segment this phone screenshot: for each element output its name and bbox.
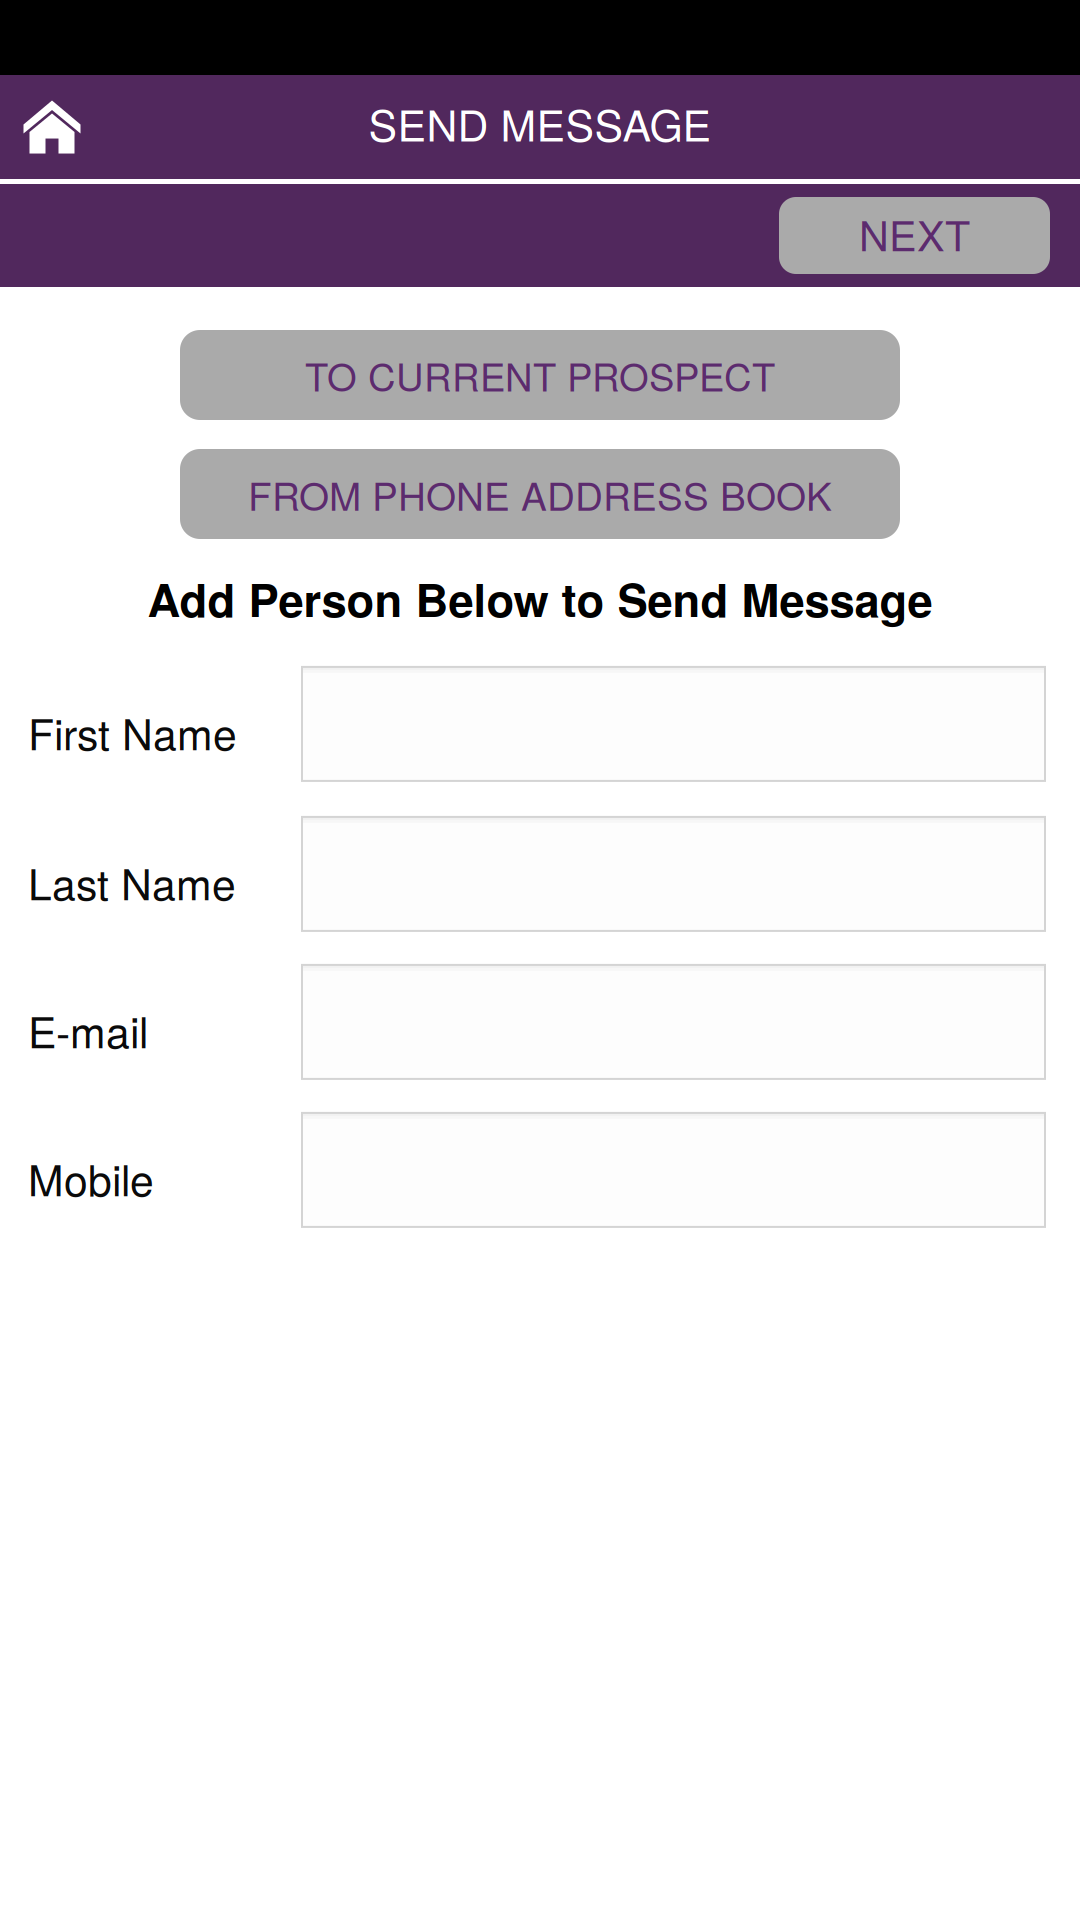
button[interactable]: NEXT: [779, 197, 1050, 274]
staticText: Last Name: [28, 851, 236, 912]
staticText: Add Person Below to Send Message: [147, 566, 932, 631]
button[interactable]: TO CURRENT PROSPECT: [180, 330, 900, 420]
staticText: NEXT: [859, 204, 970, 263]
staticText: Mobile: [28, 1147, 154, 1208]
button[interactable]: Home: [0, 75, 104, 179]
button[interactable]: FROM PHONE ADDRESS BOOK: [180, 449, 900, 539]
staticText: FROM PHONE ADDRESS BOOK: [248, 466, 832, 522]
staticText: SEND MESSAGE: [368, 92, 711, 154]
staticText: E-mail: [28, 999, 148, 1060]
staticText: First Name: [28, 701, 237, 762]
staticText: TO CURRENT PROSPECT: [305, 348, 775, 402]
